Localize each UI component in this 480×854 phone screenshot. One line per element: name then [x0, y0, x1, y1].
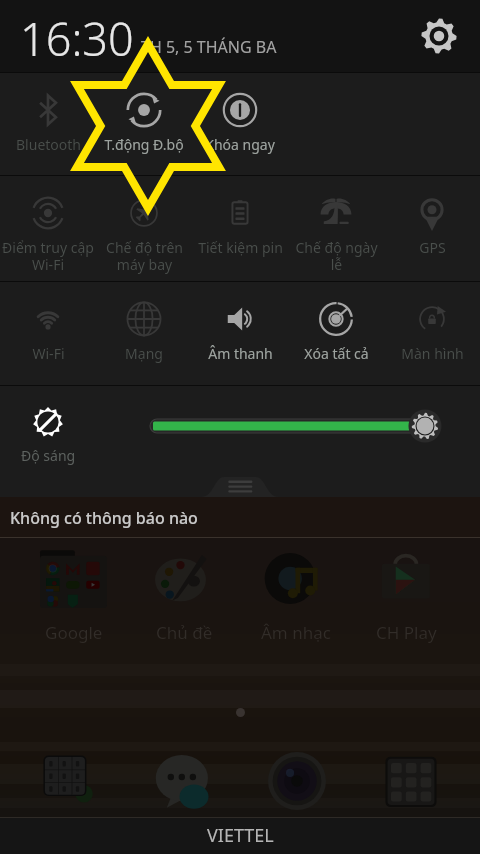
staticText: 16:30	[20, 8, 134, 69]
button[interactable]: Chế độ trên máy bay	[96, 176, 192, 281]
staticText: Google	[45, 621, 103, 644]
staticText: Khóa ngay	[205, 135, 275, 154]
button[interactable]: Màn hình	[384, 282, 480, 385]
button[interactable]: Tiết kiệm pin	[192, 176, 288, 281]
staticText: Âm nhạc	[261, 621, 331, 644]
button[interactable]: Mạng	[96, 282, 192, 385]
staticText: TH 5, 5 THÁNG BA	[141, 36, 277, 58]
button[interactable]: Wi-Fi	[0, 282, 96, 385]
button[interactable]: Brightness slider	[144, 408, 464, 444]
button[interactable]: Âm nhạc	[240, 549, 351, 644]
staticText: VIETTEL	[207, 823, 274, 848]
button[interactable]: Chủ đề	[129, 549, 240, 644]
staticText: Bluetooth	[16, 135, 81, 154]
button[interactable]: Chế độ ngày lễ	[288, 176, 384, 281]
button[interactable]: GPS	[384, 176, 480, 281]
staticText: Điểm truy cập Wi-Fi	[2, 238, 94, 274]
button[interactable]	[240, 750, 354, 812]
button[interactable]	[12, 750, 126, 812]
button[interactable]: Settings	[417, 14, 461, 58]
button[interactable]: Bluetooth	[0, 73, 96, 175]
staticText: Mạng	[125, 344, 163, 363]
staticText: Màn hình	[401, 344, 464, 363]
button[interactable]: CH Play	[351, 549, 462, 644]
staticText: Tiết kiệm pin	[198, 238, 283, 257]
button[interactable]: T.động Đ.bộ	[96, 73, 192, 175]
staticText: CH Play	[376, 621, 437, 644]
button[interactable]: Âm thanh	[192, 282, 288, 385]
staticText: Chế độ ngày lễ	[295, 238, 378, 274]
staticText: Xóa tất cả	[304, 344, 369, 363]
button[interactable]: Google	[18, 549, 129, 644]
staticText: T.động Đ.bộ	[104, 135, 184, 154]
button[interactable]	[354, 750, 468, 812]
staticText: Wi-Fi	[32, 344, 65, 363]
staticText: Độ sáng	[21, 446, 76, 465]
staticText: Không có thông báo nào	[10, 507, 198, 529]
staticText: Chủ đề	[156, 621, 213, 644]
button[interactable]: Độ sáng	[0, 386, 96, 476]
button[interactable]: Khóa ngay	[192, 73, 288, 175]
button[interactable]: Điểm truy cập Wi-Fi	[0, 176, 96, 281]
staticText: Chế độ trên máy bay	[106, 238, 183, 274]
staticText: GPS	[419, 238, 446, 257]
button[interactable]: Xóa tất cả	[288, 282, 384, 385]
staticText: Âm thanh	[208, 344, 273, 363]
button[interactable]	[126, 750, 240, 812]
